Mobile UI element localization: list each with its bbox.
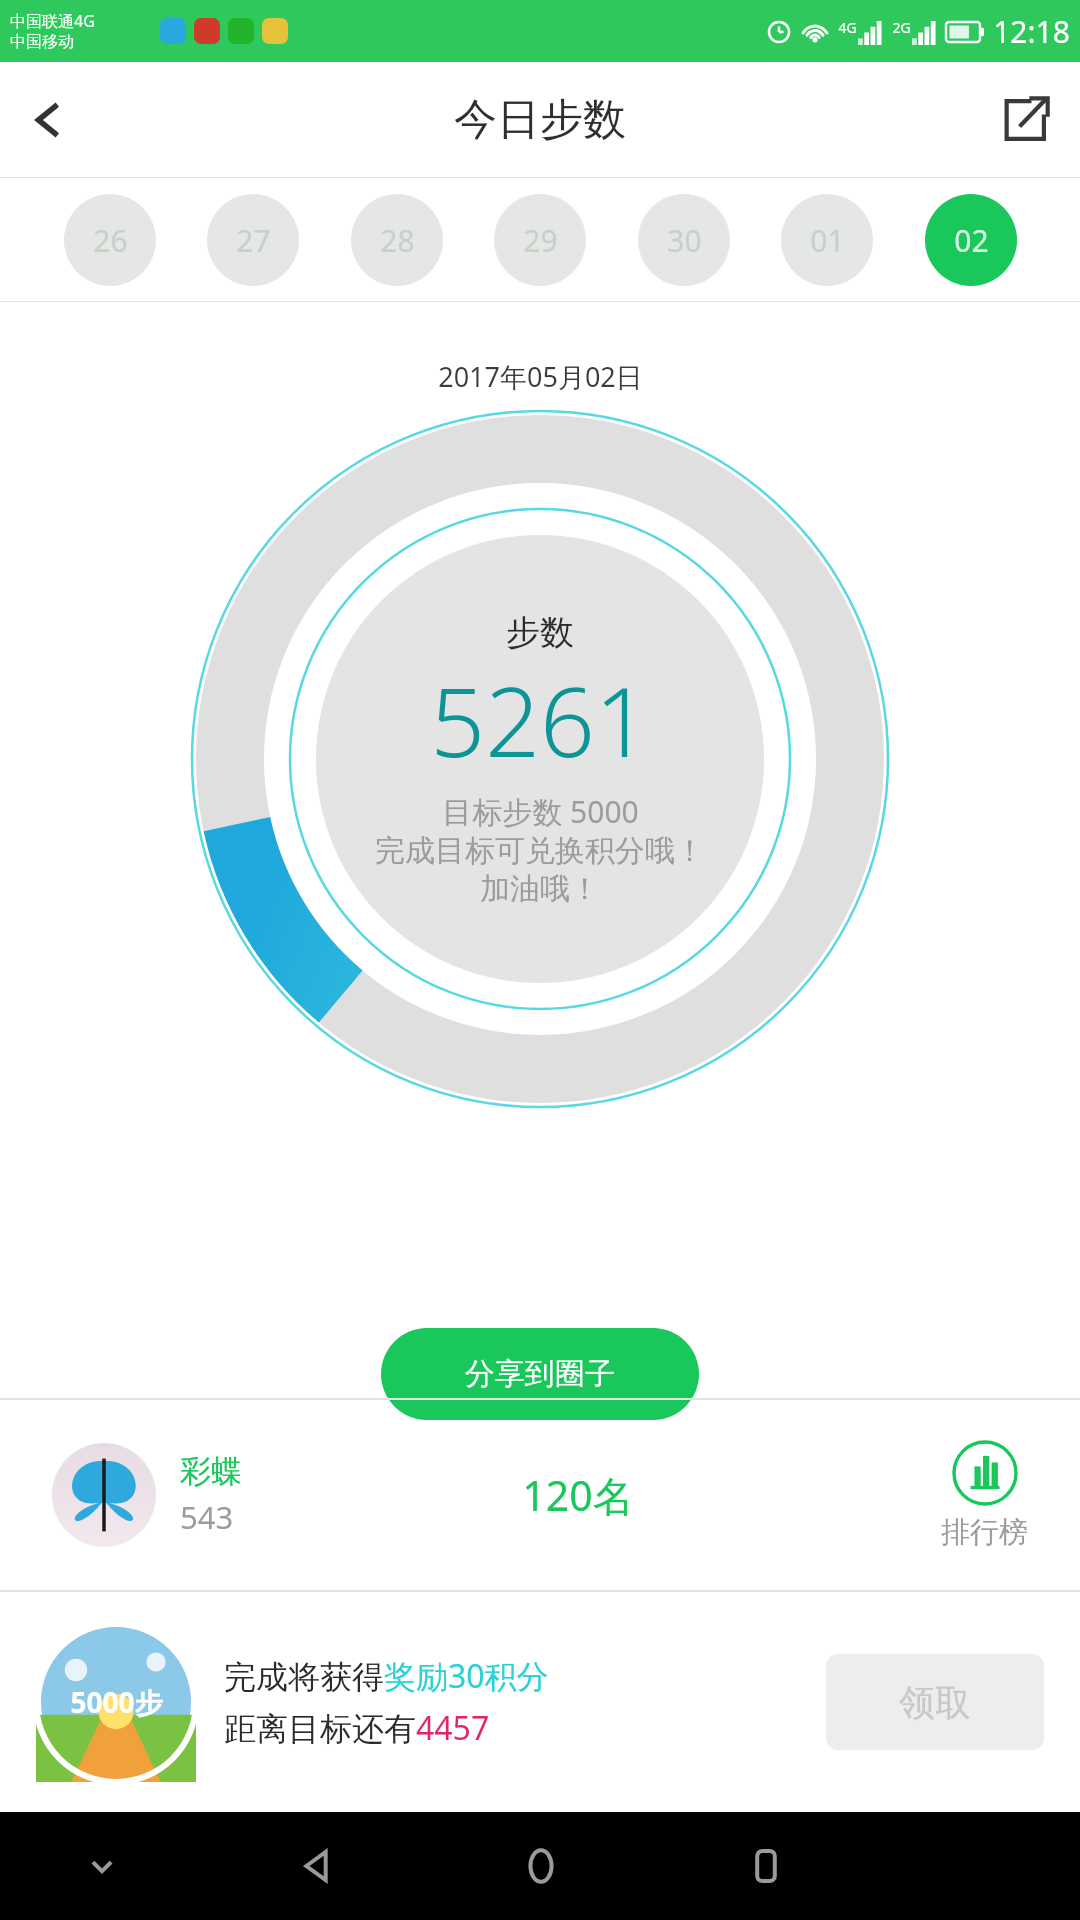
staticText: 4G: [838, 18, 857, 37]
staticText: 5261: [430, 654, 650, 785]
button[interactable]: 29: [494, 194, 586, 286]
staticText: 01: [810, 220, 845, 261]
button[interactable]: 28: [351, 194, 443, 286]
staticText: 2017年05月02日: [438, 358, 643, 395]
staticText: 27: [236, 220, 271, 261]
button[interactable]: 26: [64, 194, 156, 286]
button[interactable]: 02: [925, 194, 1017, 286]
staticText: 分享到圈子: [465, 1355, 615, 1393]
staticText: 今日步数: [454, 93, 626, 147]
button[interactable]: 30: [638, 194, 730, 286]
button[interactable]: 彩蝶: [0, 1400, 1080, 1590]
button[interactable]: Back: [0, 72, 96, 168]
staticText: 02: [954, 220, 989, 261]
staticText: 30: [667, 220, 702, 261]
staticText: 28: [380, 220, 415, 261]
button[interactable]: Back: [203, 1812, 428, 1920]
staticText: 120名: [522, 1467, 634, 1523]
staticText: 2G: [892, 18, 911, 37]
staticText: 步数: [506, 611, 574, 654]
button[interactable]: 01: [781, 194, 873, 286]
button[interactable]: 分享到圈子: [381, 1328, 699, 1420]
staticText: 完成将获得奖励30积分: [224, 1654, 549, 1698]
staticText: 完成目标可兑换积分哦！: [375, 832, 705, 870]
staticText: 距离目标还有4457: [224, 1706, 490, 1750]
button[interactable]: Hide keyboard: [0, 1812, 203, 1920]
staticText: 加油哦！: [480, 870, 600, 908]
button[interactable]: Recents: [653, 1812, 878, 1920]
button[interactable]: 领取: [826, 1654, 1044, 1750]
staticText: 543: [180, 1496, 234, 1538]
staticText: 彩蝶: [180, 1452, 242, 1491]
staticText: 中国移动: [10, 32, 74, 52]
button[interactable]: 27: [207, 194, 299, 286]
staticText: 12:18: [993, 11, 1070, 52]
staticText: 目标步数 5000: [442, 791, 639, 832]
staticText: 5000步: [70, 1683, 163, 1721]
staticText: 排行榜: [941, 1514, 1028, 1551]
button[interactable]: Home: [428, 1812, 653, 1920]
staticText: 领取: [899, 1680, 971, 1725]
staticText: 26: [93, 220, 128, 261]
button[interactable]: Share: [970, 65, 1080, 175]
staticText: 29: [523, 220, 558, 261]
staticText: 中国联通4G: [10, 10, 95, 32]
